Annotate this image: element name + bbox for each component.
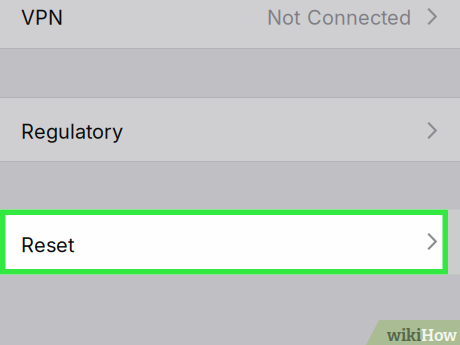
button[interactable]: VPN bbox=[0, 0, 460, 48]
staticText: VPN bbox=[21, 5, 63, 30]
staticText: Not Connected bbox=[267, 5, 411, 30]
button[interactable]: Regulatory bbox=[0, 98, 460, 161]
staticText: wiki bbox=[387, 325, 421, 345]
staticText: How bbox=[421, 325, 457, 345]
button[interactable]: Reset bbox=[0, 211, 460, 276]
staticText: Reset bbox=[21, 233, 75, 257]
staticText: Regulatory bbox=[21, 119, 123, 144]
